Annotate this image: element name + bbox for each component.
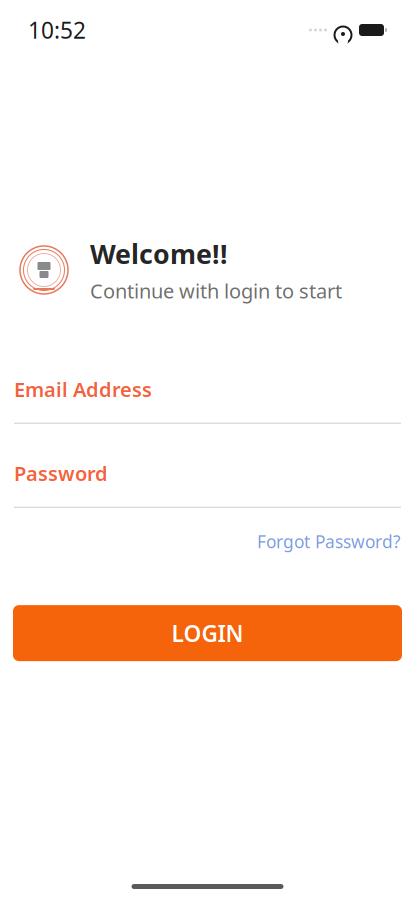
staticText: 10:52 [28, 15, 86, 45]
staticText: Welcome!! [90, 236, 228, 271]
staticText: Continue with login to start [90, 277, 342, 304]
button[interactable]: LOGIN [13, 605, 402, 661]
button[interactable]: Forgot Password? [257, 524, 401, 559]
staticText: Email Address [14, 376, 152, 403]
staticText: LOGIN [171, 618, 243, 648]
staticText: Forgot Password? [257, 530, 401, 553]
staticText: Password [14, 460, 108, 487]
